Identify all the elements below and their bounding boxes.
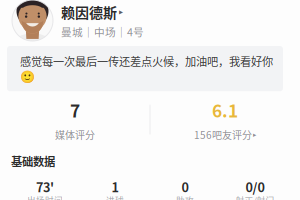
staticText: 进球 <box>106 194 124 200</box>
staticText: 🙂 <box>20 70 35 84</box>
staticText: 0/0 <box>245 178 264 196</box>
staticText: ▸ <box>119 7 123 16</box>
staticText: 感觉每一次最后一传还差点火候，加油吧，我看好你 <box>20 53 273 69</box>
button[interactable]: 赖因德斯 <box>0 0 300 41</box>
staticText: 曼城｜中场｜4号 <box>61 24 144 39</box>
staticText: 基础数据 <box>11 153 55 169</box>
staticText: 射正/射门 <box>235 194 274 200</box>
staticText: 助攻 <box>176 194 194 200</box>
staticText: 73' <box>36 178 54 196</box>
staticText: ▸ <box>253 131 256 138</box>
button[interactable]: 6.1 <box>150 97 300 142</box>
staticText: 7 <box>70 97 80 122</box>
staticText: 0 <box>181 178 188 196</box>
staticText: 出场时间 <box>27 194 63 200</box>
staticText: 1 <box>111 178 118 196</box>
staticText: 赖因德斯 <box>61 2 117 22</box>
staticText: 媒体评分 <box>55 127 95 142</box>
staticText: 156吧友评分 <box>194 127 252 142</box>
staticText: 6.1 <box>212 97 238 122</box>
